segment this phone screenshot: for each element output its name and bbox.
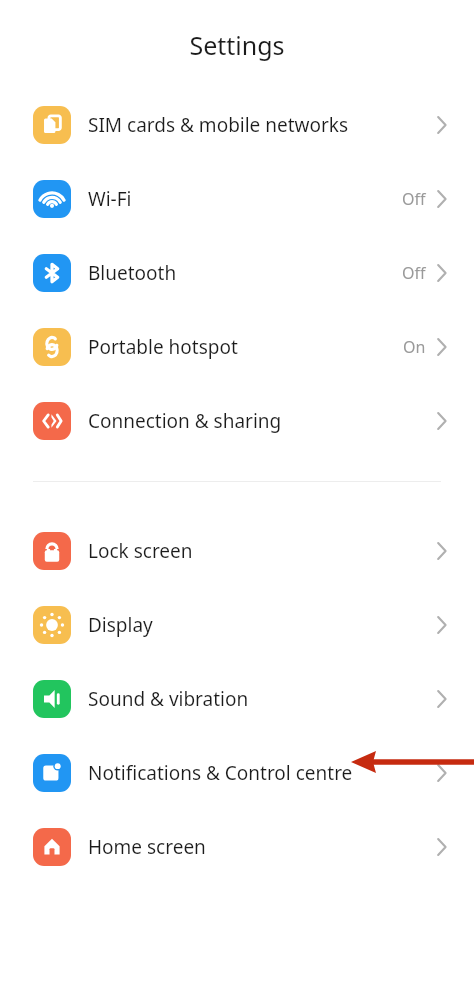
staticText: Lock screen [88, 538, 428, 564]
button[interactable]: Notifications & Control centre [0, 736, 474, 810]
button[interactable]: Sound & vibration [0, 662, 474, 736]
staticText: Sound & vibration [88, 686, 428, 712]
staticText: SIM cards & mobile networks [88, 112, 428, 138]
button[interactable]: Bluetooth [0, 236, 474, 310]
button[interactable]: Home screen [0, 810, 474, 884]
button[interactable]: Connection & sharing [0, 384, 474, 458]
staticText: Notifications & Control centre [88, 760, 428, 786]
staticText: Settings [189, 28, 285, 62]
staticText: Display [88, 612, 428, 638]
button[interactable]: Lock screen [0, 514, 474, 588]
staticText: Connection & sharing [88, 408, 428, 434]
staticText: Off [402, 188, 426, 210]
staticText: Portable hotspot [88, 334, 403, 360]
staticText: On [403, 336, 426, 358]
button[interactable]: SIM cards & mobile networks [0, 88, 474, 162]
button[interactable]: Wi-Fi [0, 162, 474, 236]
button[interactable]: Portable hotspot [0, 310, 474, 384]
staticText: Bluetooth [88, 260, 402, 286]
staticText: Home screen [88, 834, 428, 860]
button[interactable]: Display [0, 588, 474, 662]
staticText: Wi-Fi [88, 186, 402, 212]
staticText: Off [402, 262, 426, 284]
